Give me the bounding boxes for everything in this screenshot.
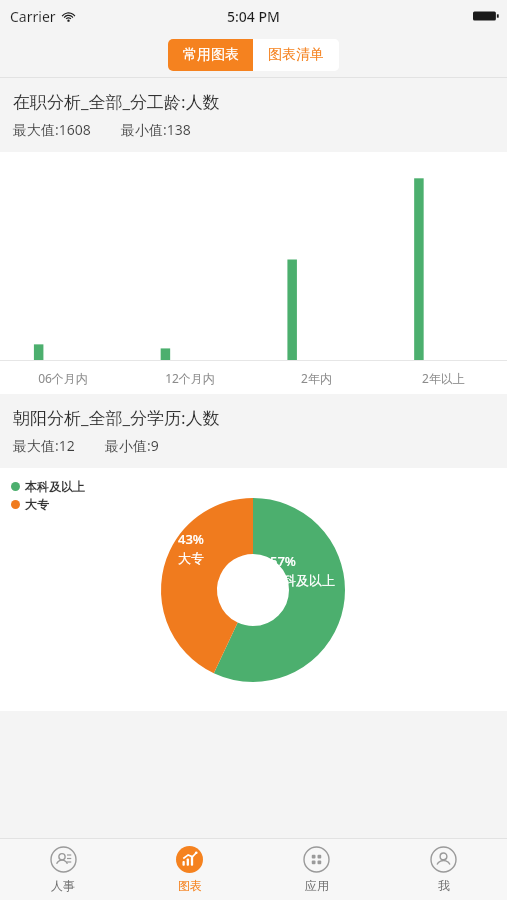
staticText: 5:04 PM — [227, 7, 280, 26]
staticText: 图表 — [178, 878, 202, 893]
staticText: 57% — [270, 552, 296, 570]
staticText: 本科及以上 — [270, 572, 335, 588]
staticText: 2年内 — [301, 370, 332, 386]
staticText: 我 — [438, 878, 450, 893]
staticText: 常用图表 — [183, 46, 239, 64]
staticText: 本科及以上 — [25, 479, 85, 494]
staticText: 2年以上 — [422, 370, 465, 386]
button[interactable]: 图表 — [126, 839, 253, 900]
staticText: Carrier — [10, 7, 56, 26]
button[interactable]: 常用图表 — [168, 39, 253, 71]
staticText: 最大值:12 — [13, 436, 75, 455]
staticText: 应用 — [305, 878, 329, 893]
button[interactable]: 图表清单 — [253, 39, 339, 71]
staticText: 12个月内 — [165, 370, 215, 386]
staticText: 人事 — [51, 878, 75, 893]
staticText: 最大值:1608 — [13, 120, 91, 139]
button[interactable]: 人事 — [0, 839, 126, 900]
staticText: 43% — [178, 530, 204, 548]
staticText: 最小值:138 — [121, 120, 191, 139]
button[interactable]: 06个月内 — [0, 152, 507, 394]
staticText: 最小值:9 — [105, 436, 159, 455]
staticText: 06个月内 — [38, 370, 88, 386]
button[interactable]: 在职分析_全部_分工龄:人数 — [0, 78, 507, 152]
button[interactable]: 朝阳分析_全部_分学历:人数 — [0, 394, 507, 468]
button[interactable]: 应用 — [253, 839, 380, 900]
button[interactable]: 我 — [380, 839, 507, 900]
staticText: 大专 — [25, 497, 49, 512]
staticText: 大专 — [178, 550, 204, 566]
button[interactable]: 本科及以上 — [0, 468, 507, 711]
staticText: 朝阳分析_全部_分学历:人数 — [13, 406, 220, 429]
staticText: 在职分析_全部_分工龄:人数 — [13, 90, 220, 113]
staticText: 图表清单 — [268, 46, 324, 64]
